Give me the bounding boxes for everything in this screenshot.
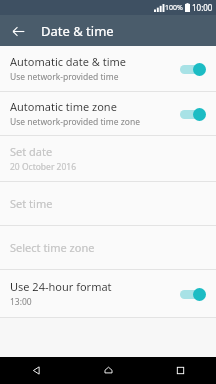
staticText: Use 24-hour format	[10, 279, 112, 294]
staticText: 13:00	[10, 296, 32, 308]
staticText: Automatic time zone	[10, 99, 117, 114]
button[interactable]: Back	[0, 357, 72, 384]
staticText: Automatic date & time	[10, 54, 127, 69]
button[interactable]: Automatic time zone	[0, 92, 216, 135]
button[interactable]: Set date	[0, 136, 216, 181]
staticText: Use network-provided time zone	[10, 116, 140, 128]
button[interactable]: Set time	[0, 182, 216, 225]
staticText: Date & time	[41, 22, 114, 40]
button[interactable]: Automatic date & time	[0, 46, 216, 91]
button[interactable]: Toggle	[178, 105, 206, 123]
button[interactable]: Toggle	[178, 60, 206, 78]
button[interactable]: Back	[6, 19, 30, 43]
staticText: Use network-provided time	[10, 71, 119, 83]
staticText: 100%	[165, 3, 183, 13]
button[interactable]: Use 24-hour format	[0, 270, 216, 317]
staticText: 20 October 2016	[10, 161, 77, 173]
button[interactable]: Select time zone	[0, 226, 216, 269]
button[interactable]: Recent apps	[144, 357, 216, 384]
staticText: 10:00	[192, 2, 213, 13]
button[interactable]: Home	[72, 357, 144, 384]
staticText: Set time	[10, 196, 53, 211]
button[interactable]: Toggle	[178, 285, 206, 303]
staticText: Select time zone	[10, 240, 95, 255]
staticText: Set date	[10, 144, 53, 159]
